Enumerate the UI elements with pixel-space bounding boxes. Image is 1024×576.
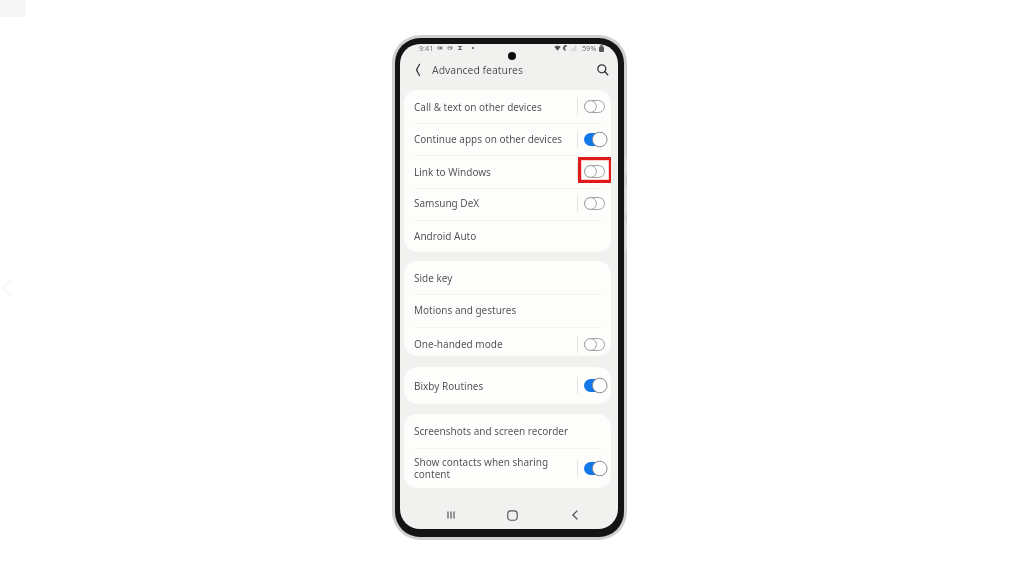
button[interactable]: Continue apps on other devices xyxy=(404,123,611,155)
button[interactable]: Off xyxy=(584,338,605,351)
staticText: Call & text on other devices xyxy=(414,100,584,114)
staticText: One-handed mode xyxy=(414,337,584,351)
button[interactable]: One-handed mode xyxy=(404,327,611,356)
button[interactable]: Off xyxy=(584,165,605,178)
button[interactable]: Bixby Routines xyxy=(404,367,611,404)
button[interactable]: Off xyxy=(584,197,605,210)
staticText: Link to Windows xyxy=(414,165,584,179)
button[interactable]: Off xyxy=(584,100,605,113)
button[interactable]: Screenshots and screen recorder xyxy=(404,414,611,448)
staticText: Side key xyxy=(414,271,584,285)
button[interactable]: Recent apps xyxy=(440,504,462,526)
button[interactable]: Samsung DeX xyxy=(404,188,611,220)
button[interactable]: Call & text on other devices xyxy=(404,90,611,123)
button[interactable]: Navigate up xyxy=(409,61,425,77)
staticText: Android Auto xyxy=(414,229,584,243)
button[interactable]: Android Auto xyxy=(404,220,611,252)
button[interactable]: Link to Windows xyxy=(404,155,611,188)
staticText: 9:41 xyxy=(419,44,434,53)
button[interactable]: Side key xyxy=(404,261,611,294)
button[interactable]: Home xyxy=(501,504,523,526)
staticText: Motions and gestures xyxy=(414,303,584,317)
staticText: 59% xyxy=(582,44,597,53)
button[interactable]: Search xyxy=(593,61,611,79)
staticText: Show contacts when sharing content xyxy=(414,455,584,481)
staticText: Advanced features xyxy=(432,63,523,77)
button[interactable]: On xyxy=(584,379,605,392)
button[interactable]: On xyxy=(584,462,605,475)
button[interactable]: Show contacts when sharing content xyxy=(404,448,611,488)
staticText: Samsung DeX xyxy=(414,196,584,210)
button[interactable]: Motions and gestures xyxy=(404,294,611,327)
staticText: Screenshots and screen recorder xyxy=(414,424,584,438)
staticText: Bixby Routines xyxy=(414,379,584,393)
button[interactable]: Back xyxy=(563,504,585,526)
button[interactable]: On xyxy=(584,133,605,146)
staticText: Continue apps on other devices xyxy=(414,132,584,146)
